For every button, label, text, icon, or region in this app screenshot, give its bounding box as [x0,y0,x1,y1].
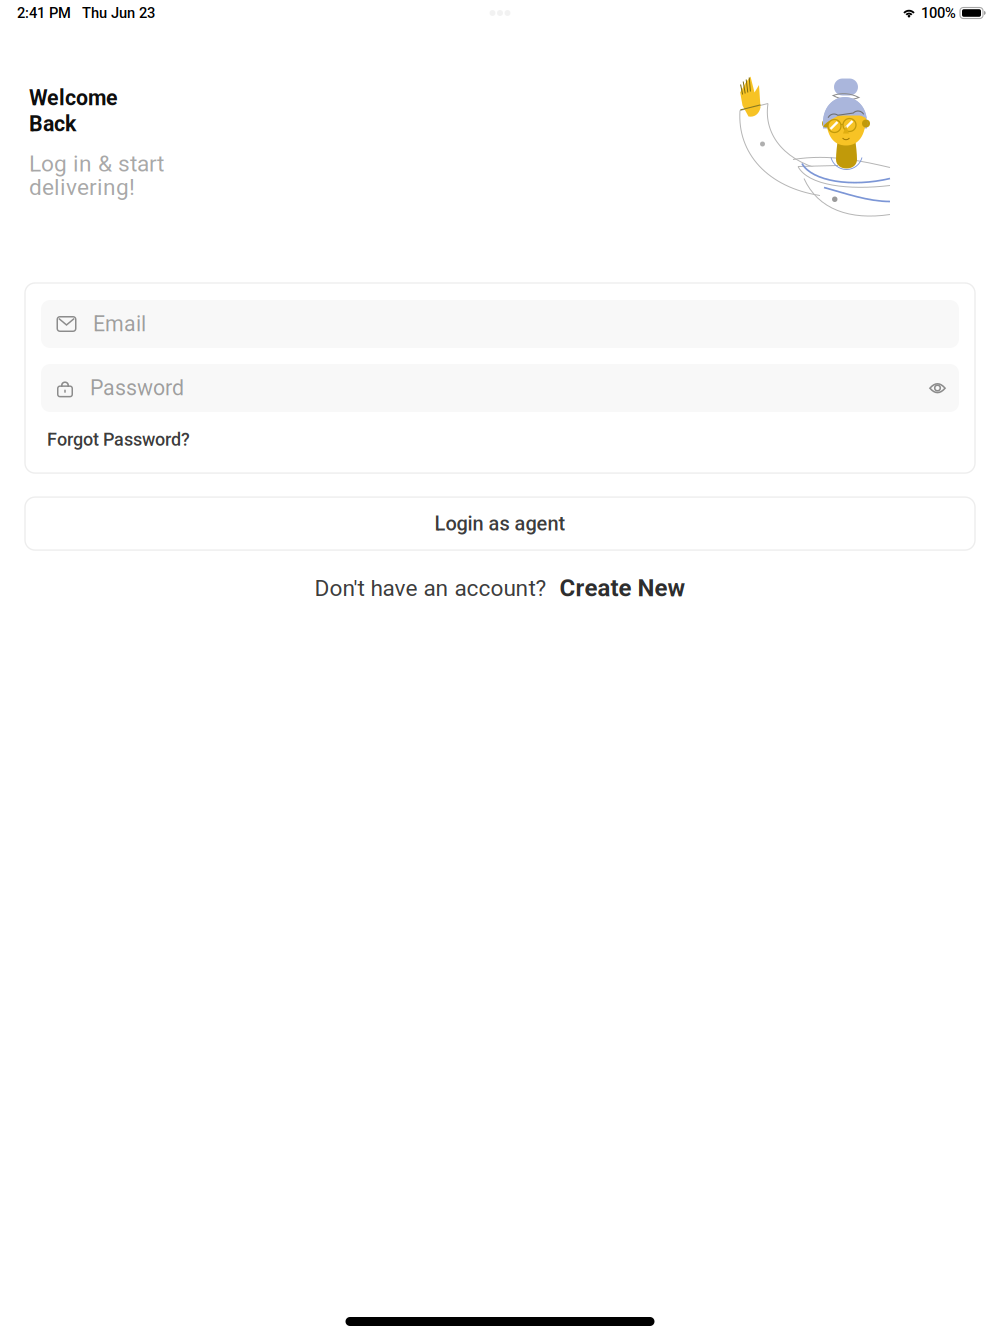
staticText: Password [90,375,184,400]
staticText: 100% [921,4,956,22]
staticText: Create New [559,574,685,602]
staticText: Forgot Password? [47,429,190,450]
staticText: Login as agent [434,512,565,535]
button[interactable]: Login as agent [25,497,975,550]
staticText: Back [29,111,76,136]
staticText: Email [93,311,146,336]
staticText: Welcome [29,85,118,110]
staticText: Don't have an account? [314,575,546,601]
button[interactable]: Show password [920,370,955,406]
staticText: 2:41 PM [17,4,71,22]
staticText: delivering! [29,174,135,201]
button[interactable]: Forgot Password? [47,426,190,453]
button[interactable]: Create New [559,574,685,602]
staticText: Log in & start [29,150,164,177]
staticText: Thu Jun 23 [82,4,155,22]
